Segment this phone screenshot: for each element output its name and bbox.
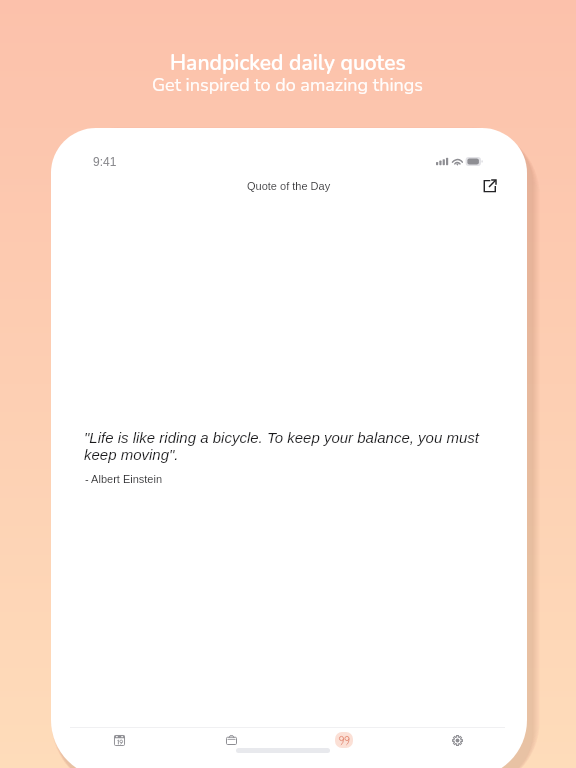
- staticText: "Life is like riding a bicycle. To keep …: [84, 429, 484, 463]
- button[interactable]: Share: [481, 178, 497, 194]
- button[interactable]: Settings: [400, 727, 513, 767]
- staticText: 9:41: [93, 155, 117, 168]
- staticText: Quote of the Day: [247, 180, 331, 192]
- staticText: - Albert Einstein: [85, 473, 163, 485]
- button[interactable]: Notes: [175, 727, 287, 767]
- button[interactable]: Quotes: [287, 727, 400, 767]
- staticText: Get inspired to do amazing things: [152, 73, 424, 98]
- staticText: Handpicked daily quotes: [170, 49, 406, 78]
- button[interactable]: Calendar: [63, 727, 175, 767]
